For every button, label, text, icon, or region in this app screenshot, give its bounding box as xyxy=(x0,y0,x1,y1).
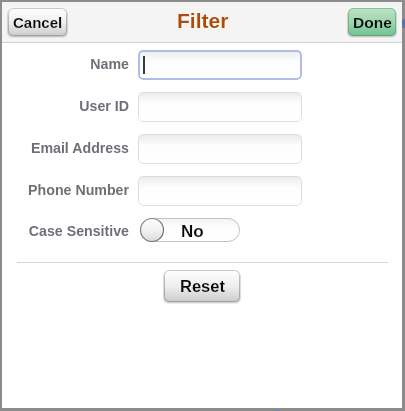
staticText: Cancel xyxy=(13,14,63,31)
staticText: Case Sensitive xyxy=(28,223,129,239)
staticText: Filter xyxy=(177,9,229,32)
button[interactable]: Reset xyxy=(164,270,240,302)
button[interactable]: Done xyxy=(348,8,396,36)
button[interactable] xyxy=(138,176,302,206)
button[interactable] xyxy=(138,92,302,122)
staticText: Done xyxy=(353,14,392,31)
button[interactable]: No xyxy=(140,218,240,242)
button[interactable] xyxy=(138,50,302,80)
button[interactable]: Cancel xyxy=(8,8,67,36)
staticText: Email Address xyxy=(30,140,129,156)
staticText: Reset xyxy=(180,277,225,295)
staticText: Phone Number xyxy=(28,182,129,198)
staticText: Name xyxy=(90,56,129,72)
button[interactable] xyxy=(138,134,302,164)
staticText: User ID xyxy=(79,98,129,114)
staticText: No xyxy=(181,222,204,241)
